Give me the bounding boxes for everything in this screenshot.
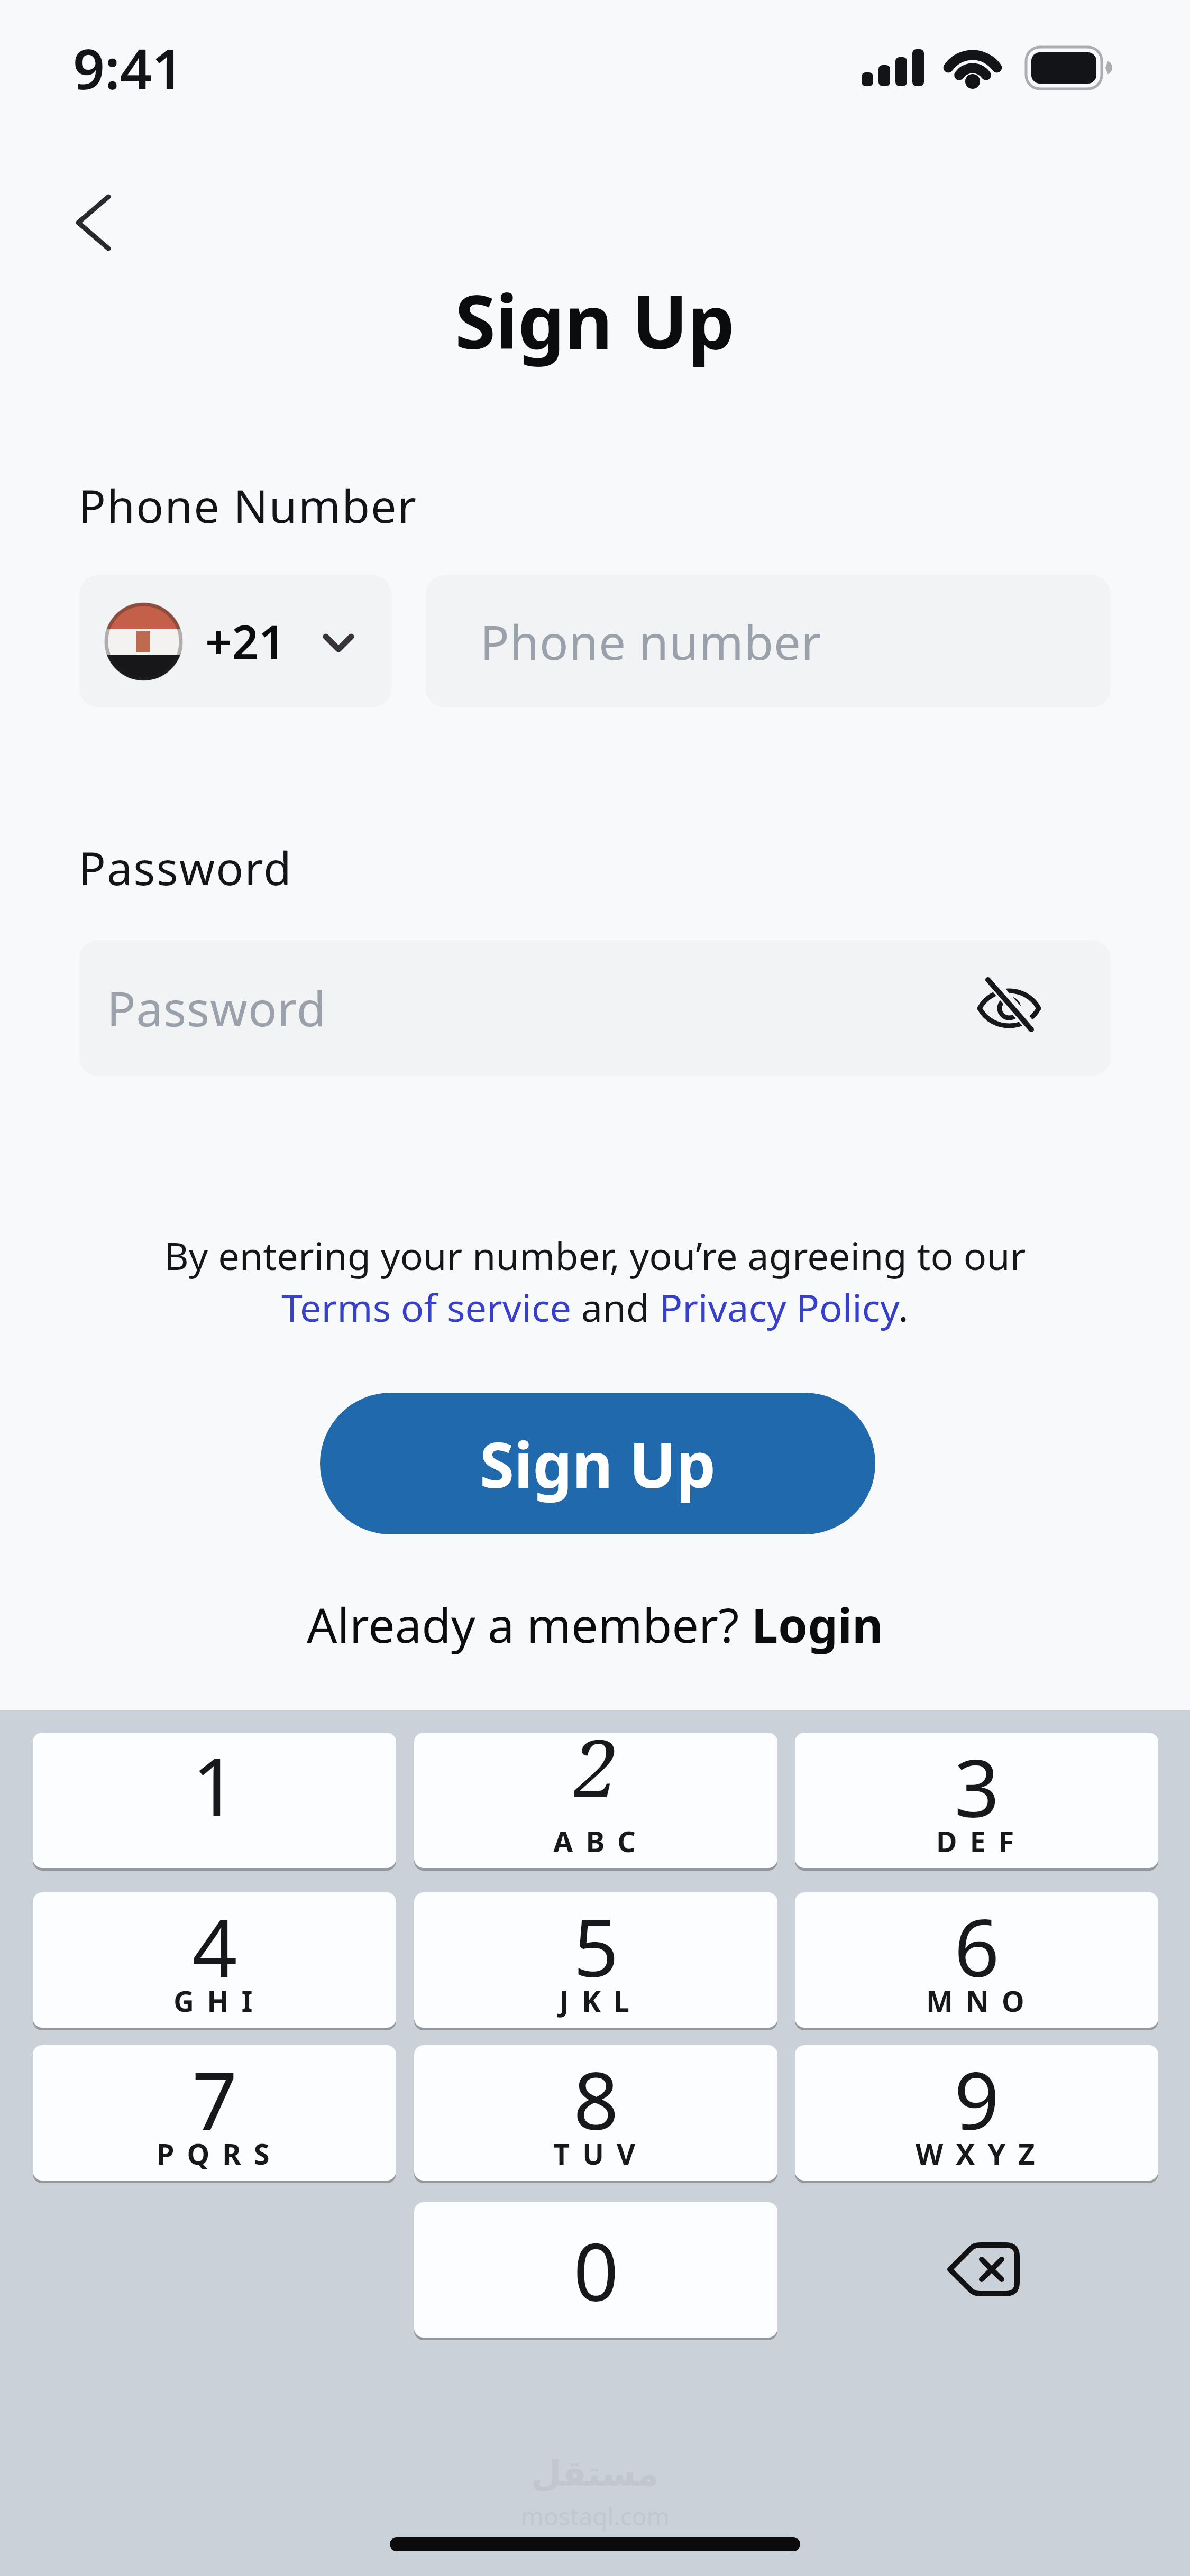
button[interactable]: Sign Up	[320, 1393, 875, 1534]
button[interactable]	[53, 174, 148, 270]
staticText: Sign Up	[455, 270, 735, 371]
staticText: 6	[954, 1892, 1000, 1993]
staticText: W X Y Z	[916, 2134, 1038, 2173]
button[interactable]	[795, 2202, 1158, 2338]
button[interactable]: 1	[33, 1733, 396, 1869]
staticText: M N O	[926, 1981, 1027, 2020]
staticText: 7	[192, 2045, 237, 2146]
button[interactable]: Already a member? Login	[0, 1589, 1190, 1660]
staticText: 9	[954, 2045, 1000, 2146]
staticText: A B C	[553, 1821, 639, 1861]
staticText: +21	[205, 610, 286, 673]
staticText: Phone number	[480, 609, 821, 674]
staticText: مستقل	[531, 2453, 659, 2494]
staticText: 5	[573, 1892, 619, 1993]
staticText: J K L	[560, 1981, 632, 2020]
staticText: 8	[573, 2045, 619, 2146]
staticText: 0	[573, 2216, 619, 2324]
button[interactable]: 9	[795, 2045, 1158, 2181]
button[interactable]: 3	[795, 1733, 1158, 1869]
button[interactable]: 6	[795, 1892, 1158, 2028]
staticText: 1	[192, 1731, 237, 1839]
staticText: D E F	[936, 1821, 1017, 1861]
button[interactable]: 7	[33, 2045, 396, 2181]
button[interactable]: 8	[414, 2045, 777, 2181]
staticText: 9:41	[73, 30, 184, 106]
staticText: By entering your number, you’re agreeing…	[164, 1229, 1026, 1279]
button[interactable]: Terms of service and Privacy Policy.	[0, 1281, 1190, 1331]
staticText: 3	[954, 1733, 1000, 1833]
staticText: P Q R S	[157, 2134, 272, 2173]
staticText: mostaql.com	[521, 2499, 670, 2533]
button[interactable]: Phone number	[426, 575, 1111, 707]
staticText: G H I	[173, 1981, 255, 2020]
staticText: 4	[192, 1892, 237, 1993]
button[interactable]: +21	[79, 575, 391, 707]
staticText: Already a member? Login	[307, 1592, 883, 1657]
staticText: Password	[78, 836, 292, 898]
button[interactable]: 2	[414, 1733, 777, 1869]
button[interactable]: Password	[79, 940, 1111, 1076]
button[interactable]: 0	[414, 2202, 777, 2338]
staticText: T U V	[553, 2134, 638, 2173]
staticText: 2	[574, 1713, 618, 1813]
button[interactable]: 5	[414, 1892, 777, 2028]
staticText: Password	[107, 976, 327, 1041]
staticText: Terms of service and Privacy Policy.	[281, 1281, 909, 1331]
staticText: Phone Number	[78, 474, 418, 536]
button[interactable]	[976, 976, 1042, 1041]
button[interactable]: 4	[33, 1892, 396, 2028]
staticText: Sign Up	[480, 1421, 716, 1506]
